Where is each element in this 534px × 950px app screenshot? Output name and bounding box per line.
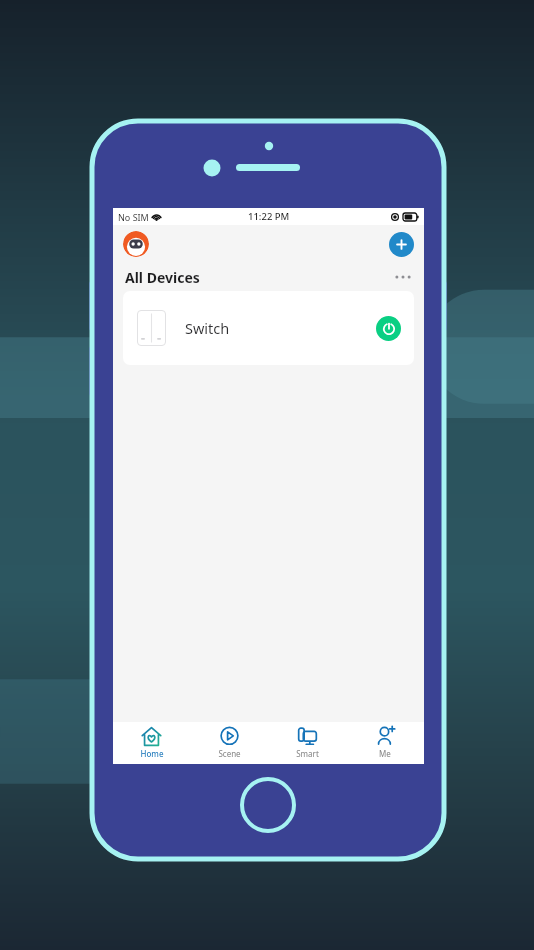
button[interactable]: Profile (123, 231, 149, 257)
staticText: Me (379, 748, 391, 759)
button[interactable]: Scene (190, 722, 268, 764)
button[interactable]: More options (392, 266, 414, 288)
button[interactable]: Smart (268, 722, 346, 764)
button[interactable]: Switch (123, 291, 414, 365)
staticText: Scene (218, 748, 241, 759)
button[interactable]: Power toggle (376, 316, 401, 341)
button[interactable]: Me (346, 722, 424, 764)
staticText: All Devices (125, 268, 200, 287)
button[interactable]: Home (113, 722, 190, 764)
staticText: Home (140, 748, 164, 759)
staticText: 11:22 PM (248, 210, 290, 223)
staticText: Switch (185, 318, 230, 338)
staticText: No SIM (118, 211, 149, 223)
button[interactable]: Add device (389, 232, 414, 257)
staticText: Smart (296, 748, 319, 759)
